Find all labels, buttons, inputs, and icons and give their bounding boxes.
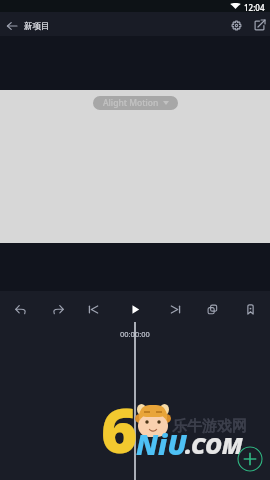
- staticText: 乐牛游戏网: [172, 417, 247, 436]
- button[interactable]: Redo: [46, 297, 70, 321]
- button[interactable]: Settings: [226, 15, 246, 35]
- staticText: NiU: [136, 425, 187, 463]
- staticText: 00:00:00: [120, 329, 150, 339]
- button[interactable]: Duplicate: [200, 297, 224, 321]
- button[interactable]: Back: [0, 14, 23, 37]
- staticText: 新项目: [24, 21, 50, 32]
- button[interactable]: Skip to start: [81, 297, 105, 321]
- button[interactable]: Undo: [8, 297, 32, 321]
- button[interactable]: Alight Motion: [93, 96, 178, 110]
- button[interactable]: Skip to end: [163, 297, 187, 321]
- button[interactable]: Bookmark: [238, 297, 262, 321]
- button[interactable]: Add layer: [237, 446, 263, 472]
- staticText: 6: [101, 387, 138, 471]
- staticText: 12:04: [244, 2, 265, 13]
- button[interactable]: Export: [249, 15, 269, 35]
- staticText: .COM: [185, 429, 243, 460]
- staticText: Alight Motion: [103, 97, 159, 109]
- button[interactable]: Play: [123, 297, 147, 321]
